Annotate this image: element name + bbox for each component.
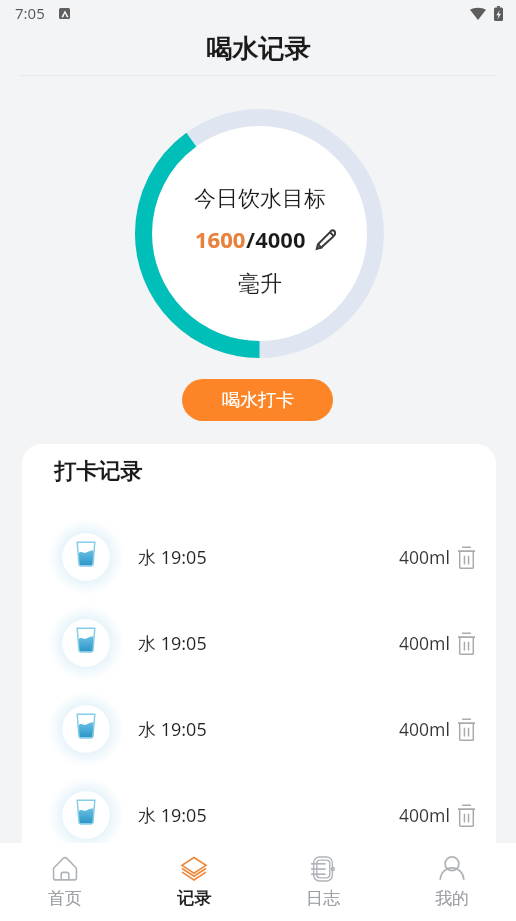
button[interactable]: Delete record: [454, 717, 478, 741]
button[interactable]: 日志: [258, 843, 387, 921]
button[interactable]: 水 19:05: [22, 600, 496, 686]
staticText: 水 19:05: [138, 631, 207, 656]
staticText: 7:05: [15, 3, 45, 23]
staticText: 喝水记录: [206, 33, 310, 66]
staticText: 今日饮水目标: [194, 185, 326, 213]
button[interactable]: Delete record: [454, 631, 478, 655]
button[interactable]: Delete record: [454, 803, 478, 827]
button[interactable]: 首页: [0, 843, 129, 921]
staticText: /4000: [246, 224, 306, 254]
staticText: 400ml: [399, 803, 450, 827]
staticText: 水 19:05: [138, 803, 207, 828]
staticText: 1600: [195, 224, 246, 254]
staticText: 毫升: [238, 270, 282, 298]
button[interactable]: 记录: [129, 843, 258, 921]
button[interactable]: 水 19:05: [22, 686, 496, 772]
staticText: 记录: [177, 888, 211, 909]
button[interactable]: Delete record: [454, 545, 478, 569]
staticText: 400ml: [399, 545, 450, 569]
staticText: 打卡记录: [54, 458, 142, 486]
staticText: 首页: [48, 888, 82, 909]
staticText: 喝水打卡: [222, 389, 294, 412]
staticText: 水 19:05: [138, 717, 207, 742]
button[interactable]: Edit goal: [316, 229, 336, 249]
staticText: 400ml: [399, 717, 450, 741]
button[interactable]: 喝水打卡: [182, 379, 333, 421]
staticText: 水 19:05: [138, 545, 207, 570]
button[interactable]: 我的: [387, 843, 516, 921]
button[interactable]: 水 19:05: [22, 514, 496, 600]
button[interactable]: 水 19:05: [22, 772, 496, 843]
staticText: 我的: [435, 888, 469, 909]
staticText: 日志: [306, 888, 340, 909]
staticText: 400ml: [399, 631, 450, 655]
